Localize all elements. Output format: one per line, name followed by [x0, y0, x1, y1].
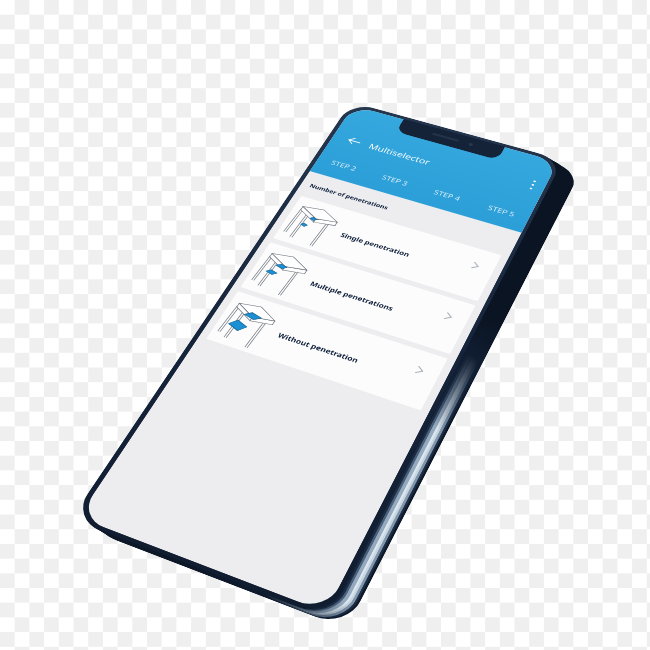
button[interactable]: STEP 3 [363, 164, 426, 196]
staticText: STEP 4 [432, 188, 462, 203]
staticText: STEP 3 [380, 173, 410, 188]
staticText: Multiple penetrations [309, 279, 396, 313]
staticText: Multiselector [367, 141, 433, 167]
button[interactable]: STEP 2 [313, 149, 374, 181]
staticText: Single penetration [339, 231, 412, 258]
button[interactable]: Without penetration [206, 291, 448, 411]
staticText: Without penetration [276, 331, 361, 365]
button[interactable]: More options [518, 174, 547, 194]
staticText: Number of penetrations [308, 182, 390, 211]
button[interactable]: Single penetration [273, 196, 502, 301]
button[interactable]: Multiple penetrations [240, 242, 476, 354]
button[interactable]: STEP 5 [469, 194, 534, 228]
staticText: STEP 5 [486, 203, 517, 219]
staticText: STEP 2 [329, 158, 359, 173]
button[interactable]: STEP 4 [415, 179, 479, 212]
button[interactable]: Back [340, 131, 368, 150]
